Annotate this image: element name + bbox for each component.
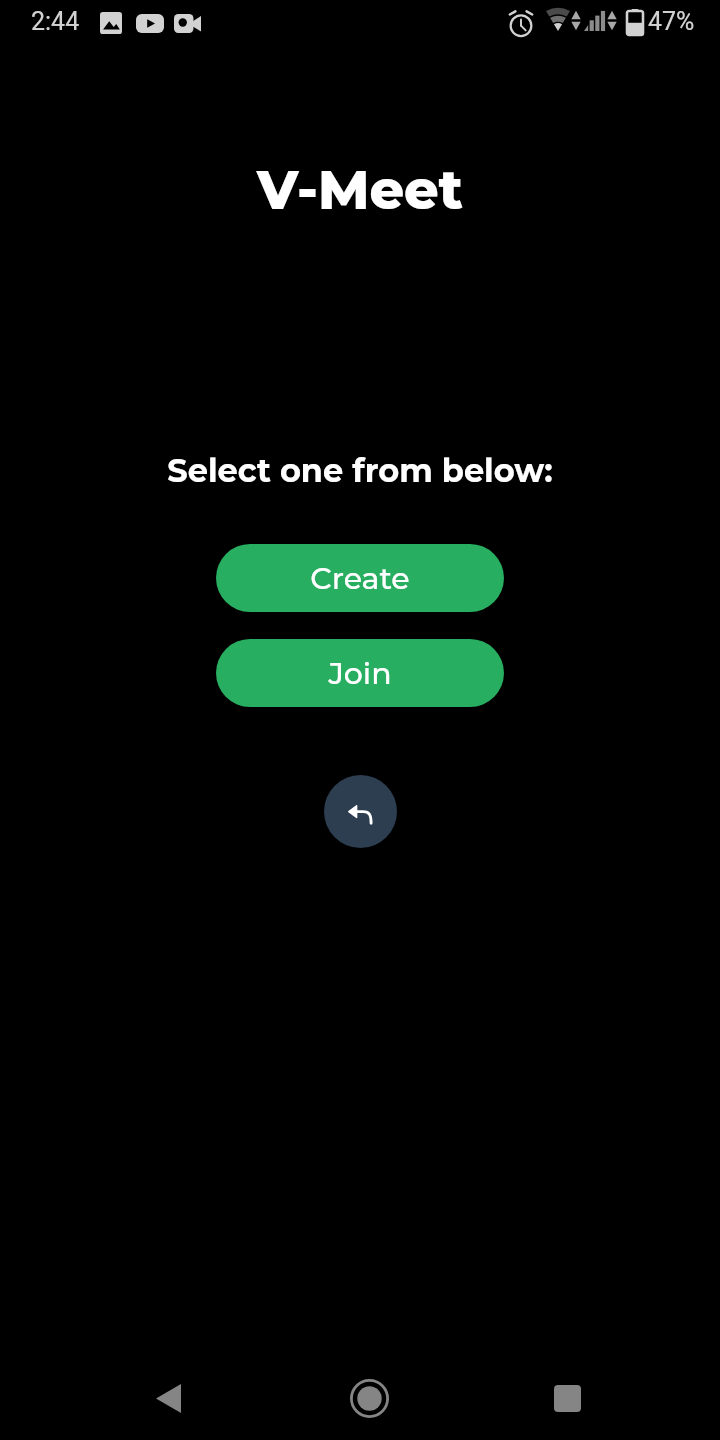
button[interactable]: Recent apps <box>537 1368 597 1428</box>
button[interactable]: Go back <box>324 775 397 848</box>
staticText: 2:44 <box>31 7 80 36</box>
staticText: Join <box>328 655 392 692</box>
button[interactable]: Home <box>339 1368 399 1428</box>
button[interactable]: Create <box>216 544 504 612</box>
staticText: 47% <box>648 7 695 36</box>
staticText: Create <box>310 560 410 597</box>
button[interactable]: Back <box>138 1368 198 1428</box>
button[interactable]: Join <box>216 639 504 707</box>
staticText: V-Meet <box>257 157 463 223</box>
staticText: Select one from below: <box>167 451 553 490</box>
